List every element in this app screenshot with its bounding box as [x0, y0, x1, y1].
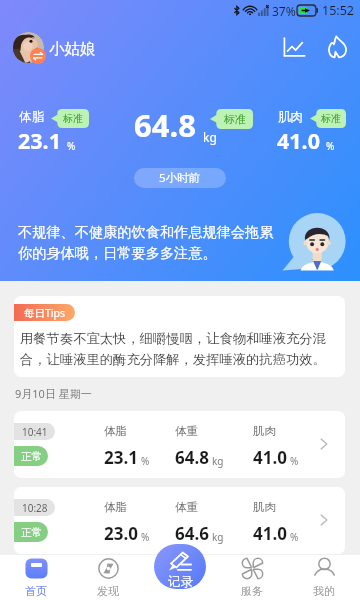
staticText: 41.0: [277, 126, 320, 155]
staticText: 记录: [168, 574, 193, 589]
button[interactable]: 发现: [72, 555, 144, 600]
staticText: 正常: [21, 526, 42, 539]
staticText: kg: [212, 454, 224, 468]
button[interactable]: 10:41: [14, 411, 345, 478]
staticText: kg: [203, 129, 217, 145]
staticText: 41.0: [253, 522, 287, 545]
staticText: 23.0: [104, 522, 138, 545]
button[interactable]: Calories: [324, 34, 350, 60]
staticText: 小姑娘: [49, 39, 96, 59]
staticText: 标准: [224, 112, 246, 126]
staticText: %: [141, 454, 150, 468]
staticText: 我的: [313, 584, 335, 598]
staticText: 正常: [21, 450, 42, 463]
staticText: 64.6: [175, 522, 209, 545]
button[interactable]: Trend chart: [280, 34, 306, 60]
staticText: 发现: [97, 584, 119, 598]
staticText: kg: [212, 530, 224, 544]
staticText: 每日Tips: [24, 306, 66, 320]
button[interactable]: 首页: [0, 555, 72, 600]
staticText: 64.8: [134, 104, 196, 146]
staticText: 15:52: [322, 2, 354, 19]
staticText: 37%: [272, 3, 296, 19]
staticText: %: [326, 139, 335, 153]
staticText: 标准: [321, 112, 341, 125]
staticText: %: [290, 530, 299, 544]
staticText: 64.8: [175, 446, 209, 469]
button[interactable]: 10:28: [14, 487, 345, 554]
staticText: 肌肉: [253, 500, 276, 514]
button[interactable]: 我的: [288, 555, 360, 600]
staticText: 体重: [175, 500, 198, 514]
staticText: 10:41: [22, 425, 48, 439]
staticText: 10:28: [22, 501, 48, 515]
button[interactable]: 记录: [154, 544, 206, 589]
staticText: 首页: [25, 584, 47, 598]
button[interactable]: 5小时前: [134, 168, 226, 188]
staticText: 肌肉: [278, 109, 303, 125]
staticText: 23.1: [18, 126, 61, 155]
staticText: 9月10日 星期一: [15, 386, 92, 401]
staticText: 体脂: [104, 500, 127, 514]
staticText: 41.0: [253, 446, 287, 469]
staticText: %: [141, 530, 150, 544]
staticText: 体脂: [104, 424, 127, 438]
staticText: 服务: [241, 584, 263, 598]
staticText: 体脂: [19, 109, 44, 125]
staticText: %: [67, 139, 76, 153]
staticText: 23.1: [104, 446, 138, 469]
staticText: 用餐节奏不宜太快，细嚼慢咽，让食物和唾液充分混: [20, 330, 326, 347]
staticText: 肌肉: [253, 424, 276, 438]
staticText: 不规律、不健康的饮食和作息规律会拖累: [18, 223, 274, 241]
staticText: 体重: [175, 424, 198, 438]
staticText: 5小时前: [159, 170, 201, 186]
staticText: 标准: [63, 112, 83, 125]
staticText: %: [290, 454, 299, 468]
staticText: 合，让唾液里的酶充分降解，发挥唾液的抗癌功效。: [20, 351, 326, 368]
staticText: 你的身体哦，日常要多多注意。: [18, 244, 217, 262]
button[interactable]: 服务: [216, 555, 288, 600]
